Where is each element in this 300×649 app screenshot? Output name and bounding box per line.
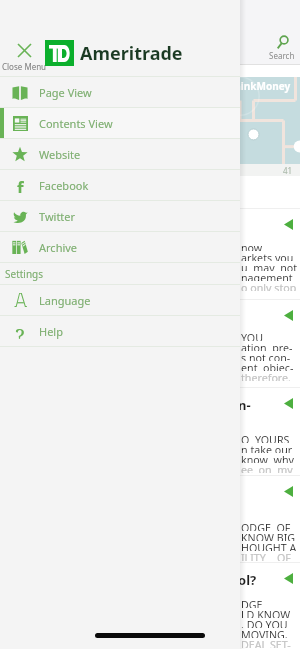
staticText: ent objec-: [241, 361, 294, 371]
staticText: Close Menu: [2, 61, 47, 72]
button[interactable]: Close Menu: [2, 42, 47, 57]
staticText: Website: [39, 147, 81, 162]
staticText: HOUGHT A: [241, 541, 297, 551]
button[interactable]: Search: [265, 35, 299, 62]
button[interactable]: Language: [0, 285, 240, 315]
staticText: Search: [269, 50, 295, 61]
staticText: now: [241, 241, 263, 251]
staticText: Page View: [39, 85, 92, 100]
button[interactable]: now: [0, 209, 300, 299]
button[interactable]: Page View: [0, 77, 240, 107]
staticText: Settings: [5, 267, 44, 281]
staticText: 41: [283, 165, 293, 176]
staticText: KNOW BIG: [241, 531, 296, 541]
staticText: Contents View: [39, 116, 113, 131]
staticText: DGE: [241, 598, 263, 608]
button[interactable]: f: [0, 170, 240, 200]
staticText: Archive: [39, 240, 78, 255]
staticText: ILITY OF: [241, 551, 291, 561]
staticText: O YOURS: [241, 433, 290, 443]
staticText: Help: [39, 324, 63, 339]
staticText: s not con-: [241, 351, 291, 361]
staticText: n take our: [241, 443, 293, 453]
button[interactable]: Website: [0, 139, 240, 169]
staticText: ODGE OF: [241, 521, 291, 531]
staticText: know why: [241, 453, 294, 463]
staticText: ation pre-: [241, 341, 293, 351]
staticText: LD KNOW: [241, 608, 291, 618]
staticText: Language: [39, 293, 91, 308]
staticText: Ameritrade: [80, 41, 183, 66]
button[interactable]: n-: [0, 388, 300, 475]
staticText: therefore.: [241, 371, 291, 381]
staticText: u may not: [241, 261, 298, 271]
staticText: n-: [238, 396, 251, 414]
button[interactable]: Archive: [0, 232, 240, 262]
staticText: ee on my: [241, 463, 293, 473]
button[interactable]: ol?: [0, 563, 300, 649]
staticText: MOVING,: [241, 628, 288, 638]
staticText: Twitter: [39, 209, 76, 224]
button[interactable]: Twitter: [0, 201, 240, 231]
staticText: arkets you: [241, 251, 294, 261]
staticText: DEAL SET-: [241, 638, 291, 648]
staticText: o only stop: [241, 281, 297, 291]
button[interactable]: YOU: [0, 300, 300, 387]
staticText: nagement: [241, 271, 293, 281]
staticText: YOU: [241, 331, 263, 341]
staticText: ol?: [238, 571, 257, 589]
staticText: , DO YOU: [241, 618, 288, 628]
button[interactable]: ?: [0, 316, 240, 346]
staticText: Facebook: [39, 178, 89, 193]
staticText: ?: [15, 323, 25, 339]
button[interactable]: ODGE OF: [0, 476, 300, 562]
staticText: thinkMoney: [230, 79, 291, 93]
staticText: f: [17, 177, 24, 193]
button[interactable]: Contents View: [0, 108, 240, 138]
